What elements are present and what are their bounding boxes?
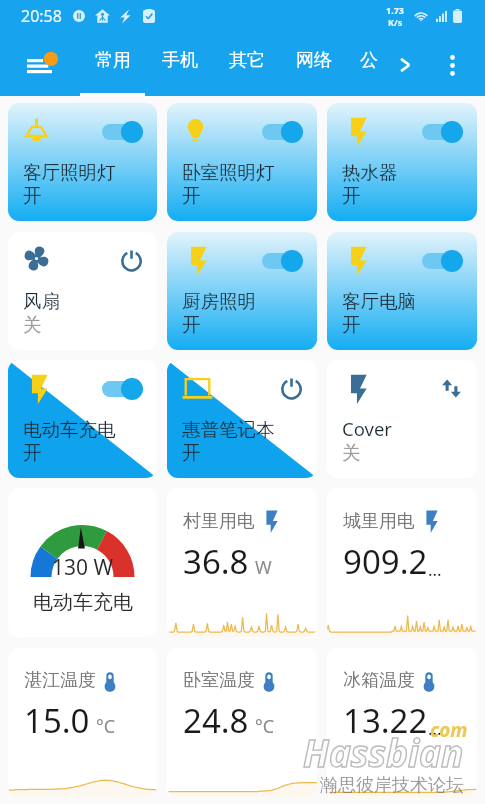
- button[interactable]: 热水器: [327, 103, 477, 221]
- staticText: W: [255, 555, 272, 580]
- staticText: Cover: [342, 416, 392, 441]
- staticText: 关: [342, 441, 361, 464]
- staticText: 开: [342, 313, 361, 336]
- staticText: 常用: [95, 49, 131, 72]
- staticText: 909.2: [343, 539, 428, 584]
- staticText: 13.22: [343, 698, 428, 743]
- button[interactable]: 网络: [280, 34, 347, 96]
- staticText: Hassbian: [303, 727, 464, 777]
- staticText: 客厅照明灯: [23, 161, 116, 184]
- button[interactable]: 城里用电: [327, 488, 477, 637]
- staticText: 开: [342, 184, 361, 207]
- staticText: 20:58: [21, 5, 62, 27]
- button[interactable]: 手机: [146, 34, 213, 96]
- staticText: 开: [182, 441, 201, 464]
- button[interactable]: More options: [419, 34, 485, 96]
- staticText: 瀚思彼岸技术论坛: [320, 774, 464, 797]
- button[interactable]: 卧室照明灯: [167, 103, 317, 221]
- staticText: 开: [182, 184, 201, 207]
- staticText: 关: [23, 313, 42, 336]
- button[interactable]: 公: [347, 34, 391, 96]
- button[interactable]: 湛江温度: [8, 648, 157, 797]
- button[interactable]: 电动车充电: [8, 360, 157, 478]
- button[interactable]: 其它: [213, 34, 280, 96]
- staticText: 卧室温度: [183, 669, 255, 692]
- staticText: 其它: [229, 49, 265, 72]
- staticText: 电动车充电: [33, 590, 133, 615]
- staticText: 130 W: [52, 553, 114, 582]
- button[interactable]: More tabs: [391, 34, 419, 96]
- staticText: 网络: [296, 49, 332, 72]
- staticText: 15.0: [24, 698, 90, 743]
- button[interactable]: 常用: [79, 34, 146, 96]
- button[interactable]: 卧室温度: [167, 648, 317, 797]
- staticText: 开: [23, 184, 42, 207]
- staticText: 开: [23, 441, 42, 464]
- button[interactable]: 客厅照明灯: [8, 103, 157, 221]
- staticText: 城里用电: [343, 510, 415, 533]
- staticText: 电动车充电: [23, 418, 116, 441]
- button[interactable]: 冰箱温度: [327, 648, 477, 797]
- staticText: ...: [428, 717, 442, 740]
- button[interactable]: 130 W: [8, 488, 157, 637]
- staticText: ...: [428, 558, 442, 581]
- button[interactable]: 厨房照明: [167, 232, 317, 350]
- staticText: 厨房照明: [182, 290, 256, 313]
- staticText: K/s: [388, 16, 403, 28]
- staticText: 开: [182, 313, 201, 336]
- staticText: 卧室照明灯: [182, 161, 275, 184]
- staticText: 湛江温度: [24, 669, 96, 692]
- staticText: 风扇: [23, 290, 60, 313]
- staticText: 热水器: [342, 161, 398, 184]
- staticText: com: [430, 717, 468, 743]
- staticText: 冰箱温度: [343, 669, 415, 692]
- button[interactable]: 村里用电: [167, 488, 317, 637]
- button[interactable]: 惠普笔记本: [167, 360, 317, 478]
- staticText: 24.8: [183, 698, 249, 743]
- button[interactable]: Menu: [0, 34, 79, 96]
- button[interactable]: 风扇: [8, 232, 157, 350]
- button[interactable]: Cover: [327, 360, 477, 478]
- staticText: 村里用电: [183, 510, 255, 533]
- staticText: 客厅电脑: [342, 290, 416, 313]
- staticText: 惠普笔记本: [182, 418, 275, 441]
- staticText: °C: [96, 714, 116, 739]
- button[interactable]: 客厅电脑: [327, 232, 477, 350]
- staticText: 公: [360, 49, 378, 72]
- staticText: °C: [255, 714, 275, 739]
- staticText: 手机: [162, 49, 198, 72]
- staticText: 36.8: [183, 539, 249, 584]
- staticText: 1.73: [386, 4, 404, 16]
